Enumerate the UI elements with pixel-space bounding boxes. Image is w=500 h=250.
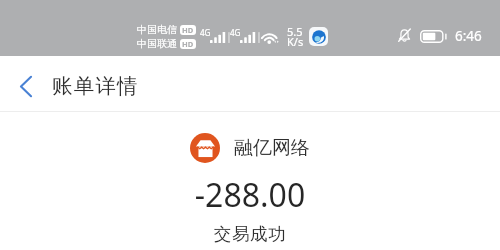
staticText: 融亿网络 [234, 136, 310, 160]
staticText: -288.00 [0, 173, 500, 217]
staticText: HD [182, 25, 194, 35]
button[interactable]: Back [9, 69, 43, 103]
staticText: 账单详情 [52, 73, 139, 99]
staticText: 中国联通 [137, 37, 177, 50]
button[interactable]: 融亿网络 [0, 133, 500, 163]
staticText: 5.5 [287, 24, 303, 39]
staticText: 交易成功 [0, 223, 500, 245]
staticText: 6:46 [455, 27, 482, 45]
staticText: 中国电信 [137, 23, 177, 36]
staticText: HD [182, 39, 194, 49]
staticText: 4G [200, 27, 211, 38]
staticText: K/s [287, 34, 304, 49]
staticText: 4G [230, 27, 241, 38]
